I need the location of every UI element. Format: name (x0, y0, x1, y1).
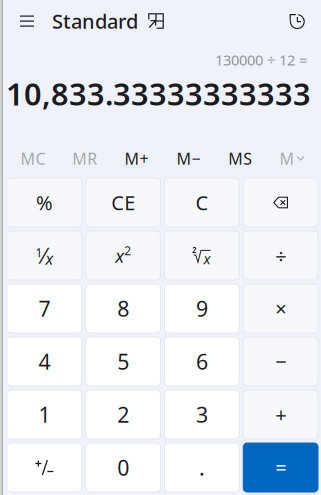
button[interactable]: MS (214, 132, 266, 178)
staticText: 2 (124, 242, 131, 258)
button[interactable]: M+ (111, 132, 162, 178)
staticText: = (275, 454, 286, 481)
staticText: 2 (117, 400, 129, 429)
button[interactable]: 9 (164, 284, 239, 333)
button[interactable]: 8 (86, 284, 161, 333)
button[interactable]: Keep on top (140, 1, 172, 41)
button[interactable]: M− (162, 132, 214, 178)
staticText: + (275, 401, 286, 428)
button[interactable]: Reciprocal (7, 231, 82, 280)
staticText: 5 (117, 347, 129, 376)
staticText: 8 (117, 294, 129, 323)
button[interactable]: Open history flyout (280, 1, 314, 41)
staticText: . (199, 453, 205, 482)
staticText: % (36, 189, 53, 216)
staticText: 1 (35, 244, 42, 260)
button[interactable]: = (243, 443, 318, 492)
button[interactable]: 3 (164, 390, 239, 439)
button[interactable]: 7 (7, 284, 82, 333)
button[interactable]: 0 (86, 443, 161, 492)
button[interactable]: Square (86, 231, 161, 280)
staticText: 130000 ÷ 12 = (215, 50, 307, 69)
button[interactable]: Square root (164, 231, 239, 280)
button[interactable]: − (243, 337, 318, 386)
button[interactable]: 6 (164, 337, 239, 386)
button[interactable]: 4 (7, 337, 82, 386)
button[interactable]: × (243, 284, 318, 333)
staticText: 7 (38, 294, 50, 323)
staticText: M+ (125, 148, 149, 169)
button[interactable]: Open Navigation (7, 1, 47, 41)
button[interactable]: % (7, 178, 82, 227)
button[interactable]: Positive negative (7, 443, 82, 492)
staticText: 1 (38, 400, 50, 429)
staticText: x (115, 243, 124, 268)
button[interactable]: 1 (7, 390, 82, 439)
button[interactable]: MR (59, 132, 111, 178)
button[interactable]: MC (7, 132, 59, 178)
staticText: 6 (196, 347, 208, 376)
button[interactable]: ÷ (243, 231, 318, 280)
button[interactable]: 5 (86, 337, 161, 386)
button[interactable]: CE (86, 178, 161, 227)
staticText: C (195, 189, 208, 216)
staticText: Standard (52, 8, 138, 34)
staticText: MC (20, 148, 45, 169)
staticText: 3 (196, 400, 208, 429)
button[interactable]: 2 (86, 390, 161, 439)
staticText: ÷ (275, 242, 286, 269)
staticText: M− (176, 148, 200, 169)
staticText: − (275, 348, 286, 375)
staticText: MS (228, 148, 252, 169)
staticText: × (275, 295, 286, 322)
staticText: 4 (38, 347, 50, 376)
staticText: x (203, 249, 210, 268)
staticText: 10,833.33333333333 (6, 73, 311, 114)
button[interactable]: Open memory flyout (266, 132, 318, 178)
staticText: 9 (196, 294, 208, 323)
staticText: MR (72, 148, 97, 169)
staticText: ⁄ (42, 241, 45, 270)
button[interactable]: Backspace (243, 178, 318, 227)
button[interactable]: . (164, 443, 239, 492)
button[interactable]: C (164, 178, 239, 227)
staticText: CE (111, 189, 135, 216)
staticText: x (45, 248, 53, 269)
button[interactable]: + (243, 390, 318, 439)
staticText: 0 (117, 453, 129, 482)
staticText: M (280, 148, 295, 169)
